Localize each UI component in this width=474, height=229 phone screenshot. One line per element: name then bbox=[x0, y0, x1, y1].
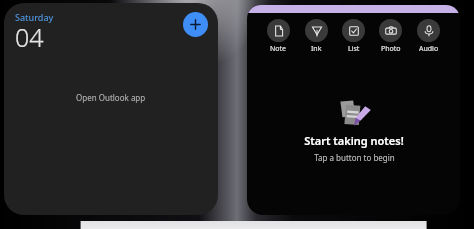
button[interactable]: Add event bbox=[183, 12, 208, 37]
staticText: Audio bbox=[419, 44, 439, 54]
staticText: Photo bbox=[381, 44, 401, 54]
staticText: Open Outlook app bbox=[76, 92, 146, 103]
staticText: Ink bbox=[311, 44, 322, 54]
staticText: Tap a button to begin bbox=[314, 152, 395, 163]
staticText: Note bbox=[270, 44, 287, 54]
button[interactable]: Audio bbox=[415, 18, 442, 55]
staticText: List bbox=[348, 44, 360, 54]
button[interactable]: Note bbox=[265, 18, 292, 55]
button[interactable]: List bbox=[340, 18, 367, 55]
staticText: Saturday bbox=[15, 11, 54, 23]
button[interactable]: Photo bbox=[377, 18, 404, 55]
staticText: Start taking notes! bbox=[304, 133, 404, 148]
button[interactable]: Ink bbox=[303, 18, 330, 55]
staticText: 04 bbox=[15, 20, 44, 54]
button[interactable]: Saturday bbox=[4, 3, 218, 215]
